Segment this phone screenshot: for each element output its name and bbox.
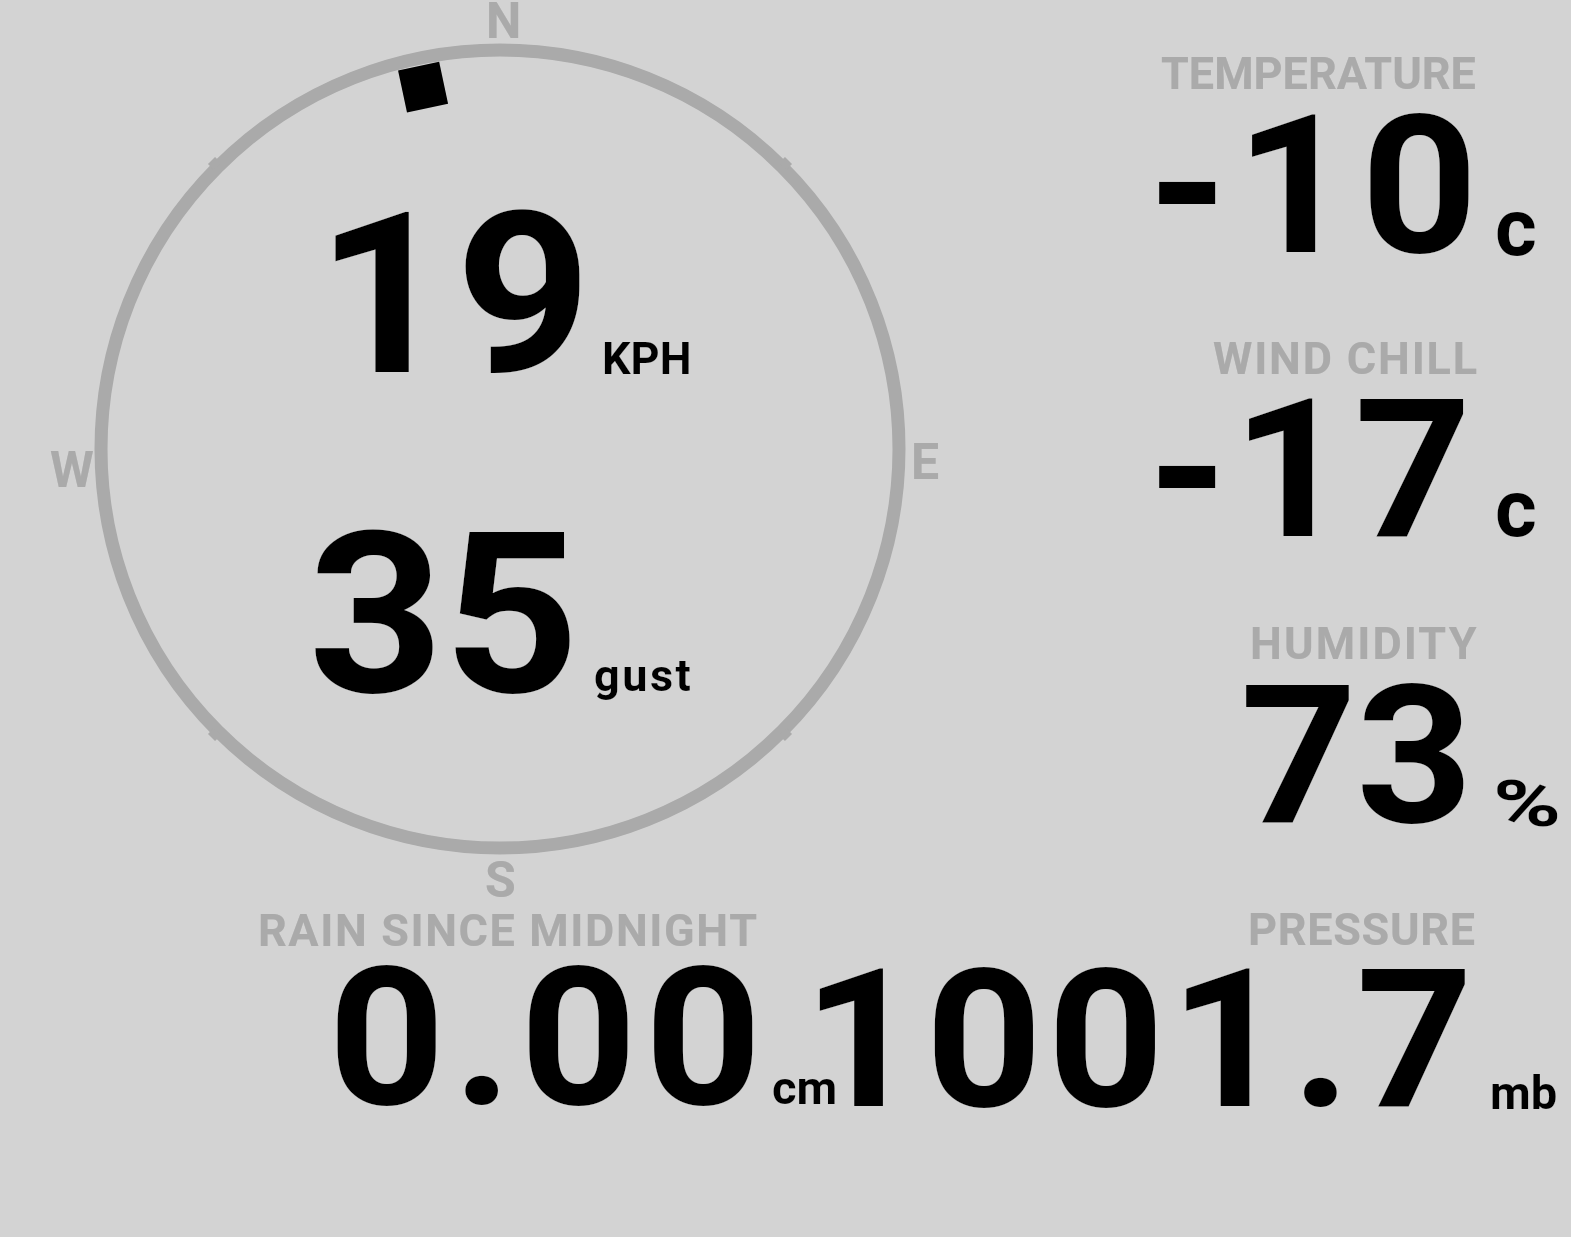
staticText: E (911, 433, 940, 492)
staticText: HUMIDITY (1250, 617, 1479, 670)
button[interactable]: Temperature minus 10 degrees Celsius (1120, 45, 1560, 260)
staticText: 1001.7 (803, 927, 1478, 1153)
staticText: TEMPERATURE (1161, 47, 1476, 100)
staticText: PRESSURE (1248, 903, 1476, 956)
staticText: gust (594, 649, 694, 702)
staticText: WIND CHILL (1213, 332, 1479, 385)
staticText: RAIN SINCE MIDNIGHT (258, 904, 759, 957)
staticText: cm (772, 1060, 838, 1115)
staticText: % (1493, 766, 1561, 842)
staticText: c (1495, 181, 1537, 275)
staticText: S (485, 851, 516, 910)
staticText: 19 (316, 164, 596, 427)
staticText: KPH (602, 332, 692, 385)
button[interactable]: Wind 19 KPH, gusting 35, direction north… (90, 40, 910, 860)
staticText: c (1495, 462, 1537, 556)
staticText: -10 (1148, 73, 1486, 299)
button[interactable]: Wind chill minus 17 degrees Celsius (1120, 330, 1560, 545)
staticText: 73 (1240, 643, 1473, 869)
staticText: -17 (1148, 357, 1477, 583)
staticText: N (486, 0, 522, 51)
button[interactable]: Humidity 73 percent (1120, 615, 1560, 830)
staticText: W (50, 441, 94, 500)
button[interactable]: Rain since midnight 0.00 cm (240, 900, 850, 1115)
button[interactable]: Pressure 1001.7 mb (860, 900, 1560, 1115)
staticText: mb (1490, 1065, 1558, 1120)
staticText: 0.00 (328, 925, 770, 1151)
staticText: 35 (308, 484, 579, 747)
